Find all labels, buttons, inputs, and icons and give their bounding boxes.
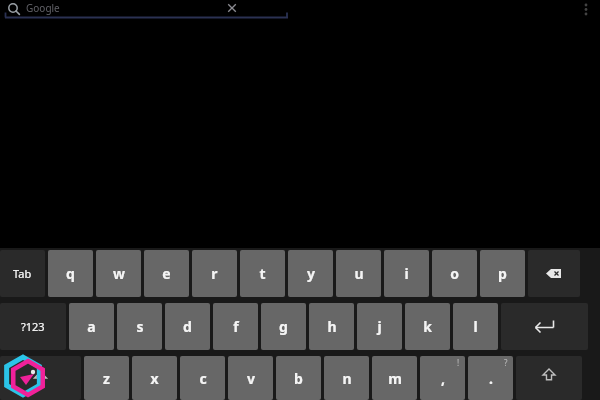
button[interactable]: . <box>468 356 513 400</box>
staticText: p <box>498 264 507 283</box>
staticText: v <box>247 369 255 388</box>
staticText: x <box>150 369 159 388</box>
button[interactable]: k <box>405 303 450 350</box>
staticText: f <box>233 317 239 336</box>
button[interactable]: x <box>132 356 177 400</box>
staticText: k <box>423 317 432 336</box>
staticText: c <box>199 369 207 388</box>
button[interactable]: o <box>432 250 477 297</box>
button[interactable]: z <box>84 356 129 400</box>
staticText: , <box>441 369 445 388</box>
button[interactable]: q <box>48 250 93 297</box>
staticText: i <box>404 264 409 283</box>
button[interactable]: Symbols <box>0 303 66 350</box>
staticText: z <box>103 369 110 388</box>
button[interactable]: s <box>117 303 162 350</box>
staticText: d <box>183 317 192 336</box>
button[interactable]: i <box>384 250 429 297</box>
button[interactable]: y <box>288 250 333 297</box>
staticText: Tab <box>13 266 32 281</box>
staticText: m <box>388 369 402 388</box>
button[interactable]: Enter <box>501 303 588 350</box>
button[interactable]: Shift <box>0 356 81 400</box>
button[interactable]: p <box>480 250 525 297</box>
staticText: Google <box>26 1 60 15</box>
button[interactable]: Google <box>0 0 295 20</box>
button[interactable]: h <box>309 303 354 350</box>
button[interactable]: e <box>144 250 189 297</box>
button[interactable]: l <box>453 303 498 350</box>
staticText: r <box>211 264 218 283</box>
staticText: y <box>307 264 315 283</box>
staticText: ?123 <box>21 319 45 334</box>
staticText: ? <box>504 357 508 368</box>
staticText: u <box>354 264 364 283</box>
button[interactable]: Tab <box>0 250 45 297</box>
button[interactable]: d <box>165 303 210 350</box>
button[interactable]: a <box>69 303 114 350</box>
button[interactable]: r <box>192 250 237 297</box>
button[interactable]: v <box>228 356 273 400</box>
button[interactable]: f <box>213 303 258 350</box>
staticText: s <box>136 317 144 336</box>
staticText: . <box>489 369 493 388</box>
staticText: h <box>327 317 337 336</box>
button[interactable]: c <box>180 356 225 400</box>
button[interactable]: Backspace <box>528 250 580 297</box>
staticText: g <box>279 317 288 336</box>
staticText: w <box>113 264 125 283</box>
staticText: o <box>450 264 459 283</box>
button[interactable]: n <box>324 356 369 400</box>
button[interactable]: w <box>96 250 141 297</box>
button[interactable]: u <box>336 250 381 297</box>
staticText: ! <box>457 357 460 368</box>
staticText: j <box>377 317 382 336</box>
button[interactable]: g <box>261 303 306 350</box>
button[interactable]: Shift <box>516 356 582 400</box>
staticText: q <box>66 264 75 283</box>
button[interactable]: t <box>240 250 285 297</box>
button[interactable]: , <box>420 356 465 400</box>
button[interactable]: b <box>276 356 321 400</box>
button[interactable]: m <box>372 356 417 400</box>
staticText: a <box>87 317 96 336</box>
staticText: l <box>473 317 478 336</box>
button[interactable]: More options <box>576 0 596 22</box>
staticText: n <box>342 369 352 388</box>
button[interactable]: j <box>357 303 402 350</box>
staticText: e <box>162 264 171 283</box>
staticText: t <box>259 264 266 283</box>
staticText: b <box>294 369 303 388</box>
